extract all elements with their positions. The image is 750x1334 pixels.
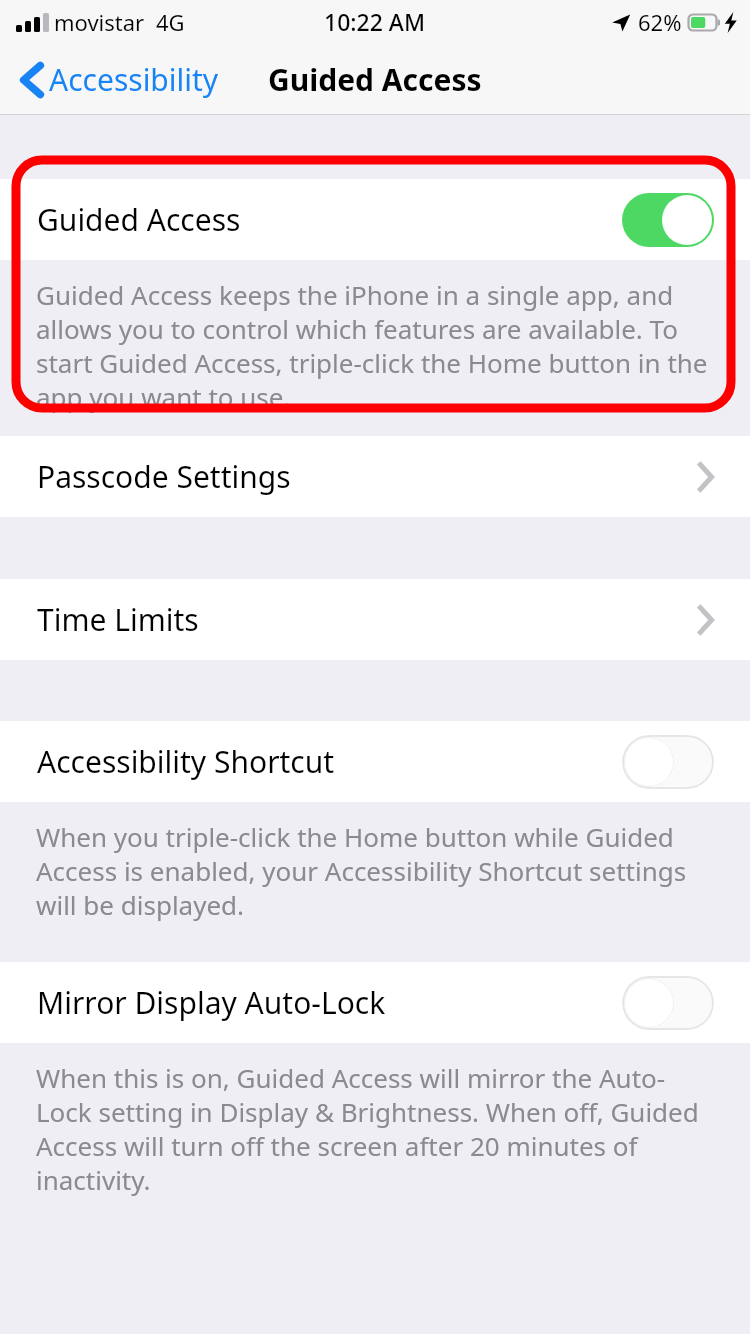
staticText: Time Limits: [37, 599, 199, 640]
staticText: 62%: [638, 7, 682, 37]
staticText: Accessibility Shortcut: [37, 741, 335, 782]
other: Open: [698, 606, 714, 634]
staticText: 4G: [156, 7, 185, 37]
staticText: Guided Access keeps the iPhone in a sing…: [36, 277, 708, 414]
staticText: 10:22 AM: [324, 6, 426, 37]
staticText: Passcode Settings: [37, 456, 291, 497]
button[interactable]: Time Limits: [0, 579, 750, 660]
button[interactable]: Toggle off: [622, 735, 714, 789]
button[interactable]: Accessibility Shortcut: [0, 721, 750, 802]
staticText: When this is on, Guided Access will mirr…: [36, 1060, 708, 1197]
staticText: Guided Access: [268, 59, 482, 100]
staticText: movistar: [54, 7, 145, 37]
staticText: Accessibility: [49, 59, 219, 100]
button[interactable]: Mirror Display Auto-Lock: [0, 962, 750, 1043]
staticText: When you triple-click the Home button wh…: [36, 819, 708, 922]
button[interactable]: Passcode Settings: [0, 436, 750, 517]
button[interactable]: Accessibility: [0, 53, 229, 106]
staticText: Guided Access: [37, 199, 241, 240]
staticText: Mirror Display Auto-Lock: [37, 982, 386, 1023]
button[interactable]: Toggle on: [622, 193, 714, 247]
button[interactable]: Toggle off: [622, 976, 714, 1030]
other: Open: [698, 463, 714, 491]
button[interactable]: Guided Access: [0, 179, 750, 260]
